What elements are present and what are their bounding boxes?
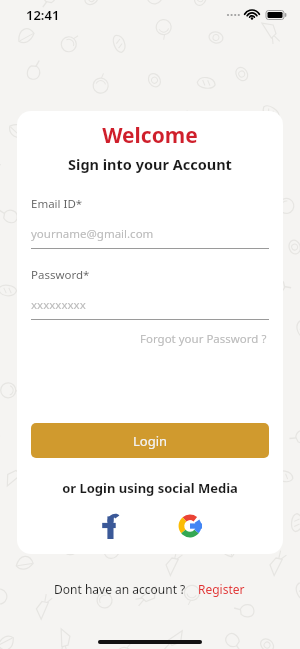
staticText: Forgot your Password ?	[140, 331, 267, 347]
staticText: Sign into your Account	[31, 154, 269, 174]
staticText: Register	[198, 581, 245, 597]
button[interactable]: Register	[196, 579, 247, 599]
staticText: Dont have an account ?	[54, 581, 186, 597]
staticText: Email ID*	[31, 196, 83, 212]
staticText: 12:41	[26, 6, 60, 24]
staticText: Login	[133, 432, 168, 450]
button[interactable]: Login	[31, 423, 269, 458]
button[interactable]: Sign in with Facebook	[92, 508, 128, 544]
button[interactable]: Sign in with Google	[172, 508, 208, 544]
staticText: Password*	[31, 267, 90, 283]
staticText: or Login using social Media	[31, 479, 269, 497]
staticText: yourname@gmail.com	[31, 226, 154, 242]
staticText: Welcome	[31, 121, 269, 150]
button[interactable]: Forgot your Password ?	[138, 329, 269, 349]
button[interactable]: xxxxxxxxx	[31, 297, 269, 320]
staticText: xxxxxxxxx	[31, 297, 86, 313]
button[interactable]: yourname@gmail.com	[31, 226, 269, 249]
